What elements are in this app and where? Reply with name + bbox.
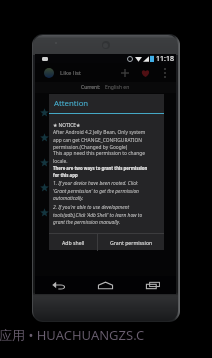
button[interactable]: More options [156, 64, 173, 81]
staticText: After Android 4.2 Jelly Bean, Only syste… [53, 129, 150, 150]
staticText: 应用 • HUACHUANGZS.C [0, 326, 145, 344]
button[interactable] [35, 150, 176, 175]
button[interactable] [35, 175, 176, 200]
staticText: ★ NOTICE★ [53, 122, 81, 129]
button[interactable]: Recent apps [129, 276, 176, 294]
button[interactable] [35, 100, 176, 125]
staticText: English en [105, 84, 130, 91]
staticText: Grant permission [110, 239, 153, 246]
button[interactable]: Favourites [137, 64, 154, 81]
button[interactable]: Adb shell [49, 234, 97, 251]
staticText: 11:18 [156, 54, 174, 63]
staticText: Current: [81, 84, 101, 91]
staticText: Like list [60, 69, 81, 77]
button[interactable]: Home [82, 276, 129, 294]
staticText: 2. If you're able to use development too… [53, 204, 150, 225]
staticText: 1. If your device have been rooted. Clic… [53, 180, 150, 201]
button[interactable] [35, 200, 176, 225]
button[interactable]: Back [35, 276, 82, 294]
button[interactable] [35, 125, 176, 150]
button[interactable]: Grant permission [98, 234, 164, 251]
staticText: Adb shell [62, 239, 85, 246]
staticText: This app need this permission to change … [53, 150, 150, 164]
staticText: Attention [54, 98, 89, 109]
button[interactable]: Add [116, 64, 133, 81]
staticText: There are two ways to grant this permiss… [53, 165, 150, 178]
